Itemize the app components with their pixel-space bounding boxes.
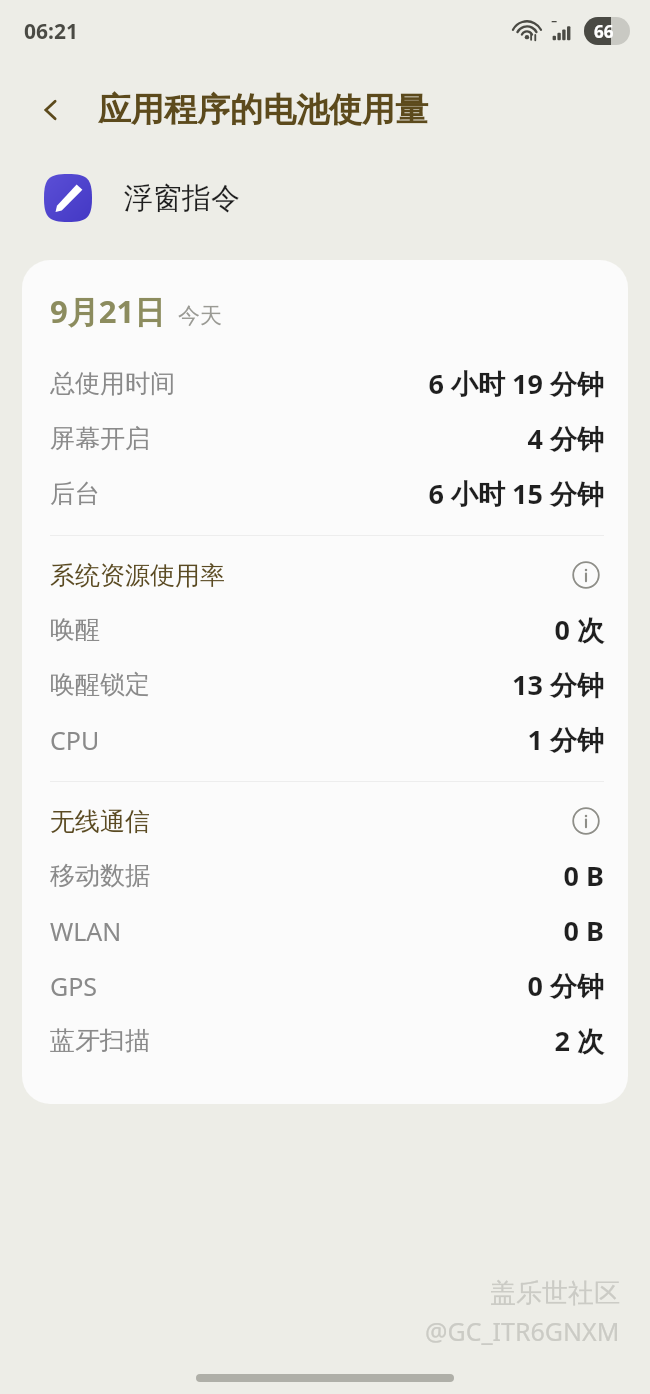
staticText: 2 次 <box>554 1022 604 1059</box>
staticText: WLAN <box>50 914 122 948</box>
staticText: 总使用时间 <box>50 368 175 399</box>
staticText: 6 小时 15 分钟 <box>428 475 604 512</box>
staticText: 06:21 <box>24 17 78 46</box>
staticText: 蓝牙扫描 <box>50 1025 150 1056</box>
staticText: 6 小时 19 分钟 <box>428 365 604 402</box>
button[interactable]: Information about 系统资源使用率 <box>568 557 604 593</box>
button[interactable]: 浮窗指令 <box>0 158 650 238</box>
staticText: 0 次 <box>554 611 604 648</box>
staticText: 13 分钟 <box>512 666 604 703</box>
button[interactable]: 屏幕开启 <box>50 411 604 466</box>
button[interactable]: 系统资源使用率 <box>50 548 604 602</box>
staticText: 后台 <box>50 478 100 509</box>
button[interactable]: Information about 无线通信 <box>568 803 604 839</box>
staticText: 盖乐世社区 <box>490 1277 620 1310</box>
button[interactable]: Back <box>26 85 76 135</box>
staticText: 1 分钟 <box>527 721 604 758</box>
staticText: 应用程序的电池使用量 <box>98 89 428 131</box>
staticText: 9月21日 <box>50 290 166 332</box>
staticText: @GC_ITR6GNXM <box>425 1314 620 1348</box>
staticText: 系统资源使用率 <box>50 560 568 591</box>
staticText: 0 B <box>563 912 604 949</box>
button[interactable]: 总使用时间 <box>50 356 604 411</box>
staticText: 0 B <box>563 857 604 894</box>
button[interactable]: 后台 <box>50 466 604 521</box>
staticText: 移动数据 <box>50 860 150 891</box>
button[interactable]: GPS <box>50 958 604 1013</box>
staticText: 无线通信 <box>50 806 568 837</box>
button[interactable]: WLAN <box>50 903 604 958</box>
staticText: 4 分钟 <box>527 420 604 457</box>
staticText: 0 分钟 <box>527 967 604 1004</box>
staticText: 浮窗指令 <box>124 180 240 217</box>
staticText: 今天 <box>178 302 222 330</box>
button[interactable]: CPU <box>50 712 604 767</box>
staticText: GPS <box>50 969 98 1003</box>
staticText: 唤醒锁定 <box>50 669 150 700</box>
staticText: 屏幕开启 <box>50 423 150 454</box>
staticText: 66 <box>594 20 614 43</box>
staticText: CPU <box>50 723 100 757</box>
button[interactable]: 唤醒 <box>50 602 604 657</box>
button[interactable]: 移动数据 <box>50 848 604 903</box>
button[interactable]: 蓝牙扫描 <box>50 1013 604 1068</box>
button[interactable]: 无线通信 <box>50 794 604 848</box>
staticText: 唤醒 <box>50 614 100 645</box>
button[interactable]: 唤醒锁定 <box>50 657 604 712</box>
